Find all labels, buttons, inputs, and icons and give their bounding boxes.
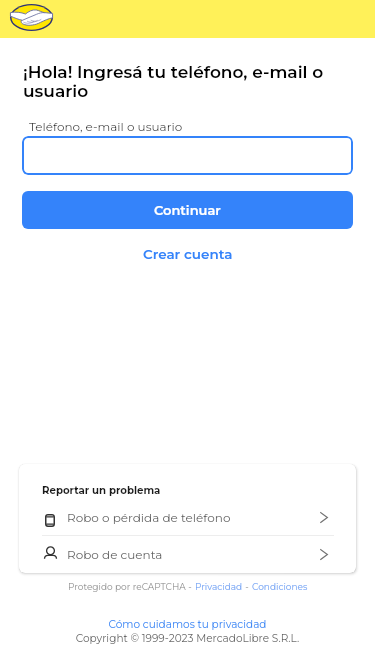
staticText: Copyright © 1999-2023 MercadoLibre S.R.L… [0,632,375,645]
button[interactable]: Continuar [22,191,353,229]
button[interactable]: Cómo cuidamos tu privacidad [0,618,375,631]
button[interactable] [22,136,353,175]
button[interactable]: Robo de cuenta [19,536,356,572]
staticText: ¡Hola! Ingresá tu teléfono, e-mail o usu… [23,62,331,102]
staticText: Crear cuenta [143,246,233,262]
staticText: Reportar un problema [42,484,161,496]
staticText: Robo de cuenta [67,547,163,562]
button[interactable]: Robo o pérdida de teléfono [19,500,356,535]
button[interactable]: Mercado Libre [10,4,53,31]
button[interactable]: Privacidad [195,581,243,592]
button[interactable]: Condiciones [252,581,308,592]
staticText: Continuar [154,202,221,218]
staticText: - [243,581,252,592]
staticText: Teléfono, e-mail o usuario [29,119,183,134]
staticText: - [186,581,195,592]
button[interactable]: Crear cuenta [22,239,353,269]
staticText: Robo o pérdida de teléfono [67,510,231,525]
staticText: Protegido por reCAPTCHA [68,581,186,592]
